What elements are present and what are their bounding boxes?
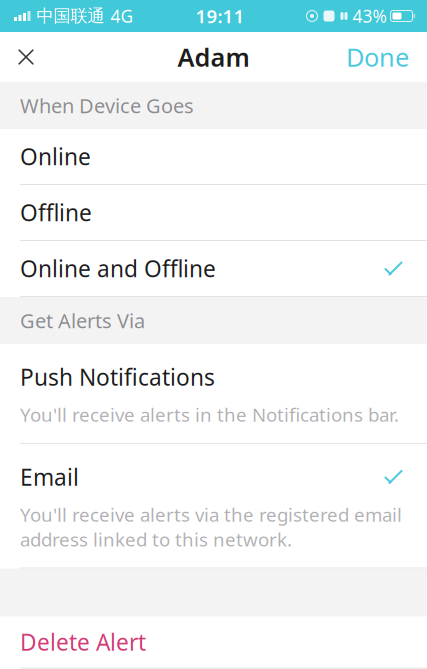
staticText: When Device Goes — [20, 92, 194, 119]
staticText: Adam — [177, 40, 249, 74]
staticText: 中国联通 — [36, 5, 104, 27]
button[interactable]: Push Notifications — [0, 344, 427, 443]
staticText: Done — [346, 40, 409, 74]
staticText: 43% — [352, 4, 386, 27]
staticText: Delete Alert — [20, 627, 146, 657]
button[interactable]: Close — [0, 32, 52, 82]
staticText: You'll receive alerts in the Notificatio… — [20, 402, 399, 427]
staticText: Push Notifications — [20, 362, 215, 392]
button[interactable]: Online — [0, 129, 427, 184]
staticText: Email — [20, 462, 79, 492]
button[interactable]: Online and Offline — [0, 241, 427, 296]
staticText: You'll receive alerts via the registered… — [20, 502, 402, 552]
staticText: Get Alerts Via — [20, 307, 145, 334]
button[interactable]: Delete Alert — [0, 617, 427, 668]
staticText: Online — [20, 141, 91, 171]
staticText: Online and Offline — [20, 253, 216, 283]
button[interactable]: Done — [346, 32, 427, 82]
staticText: 19:11 — [195, 4, 244, 28]
staticText: 4G — [110, 4, 133, 27]
staticText: Offline — [20, 197, 92, 227]
button[interactable]: Offline — [0, 185, 427, 240]
button[interactable]: Email — [0, 444, 427, 568]
